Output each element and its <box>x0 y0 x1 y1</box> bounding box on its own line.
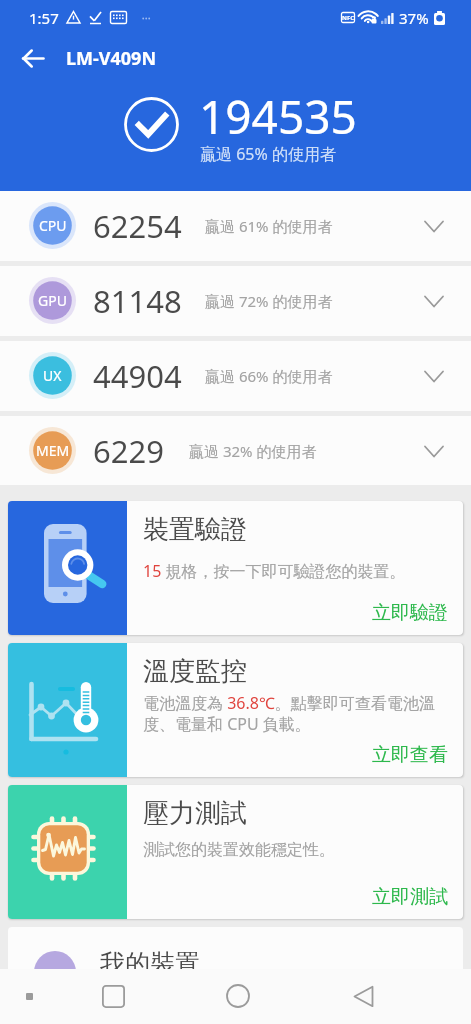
button[interactable]: Home <box>215 974 261 1018</box>
button[interactable]: 立即驗證 <box>372 601 448 625</box>
button[interactable]: MEM <box>0 416 471 485</box>
staticText: UX <box>43 366 62 385</box>
button[interactable]: 我的裝置 <box>8 927 463 1024</box>
staticText: 贏過 32% 的使用者 <box>189 441 317 461</box>
button[interactable]: 壓力測試 <box>8 785 463 919</box>
button[interactable]: Recents <box>90 974 136 1018</box>
staticText: 44904 <box>93 355 182 397</box>
staticText: 81148 <box>93 280 182 322</box>
button[interactable]: CPU <box>0 191 471 261</box>
button[interactable]: 立即查看 <box>372 743 448 767</box>
staticText: 測試您的裝置效能穩定性。 <box>143 840 335 860</box>
button[interactable]: 立即測試 <box>372 885 448 909</box>
staticText: 贏過 65% 的使用者 <box>200 143 336 165</box>
button[interactable]: Back <box>11 36 55 80</box>
staticText: 37% <box>399 8 429 28</box>
staticText: 溫度監控 <box>143 655 247 688</box>
staticText: 194535 <box>199 85 357 148</box>
staticText: 裝置驗證 <box>143 513 247 546</box>
staticText: 電池溫度為 36.8℃。點擊即可查看電池溫度、電量和 CPU 負載。 <box>143 692 448 735</box>
staticText: LM-V409N <box>66 46 157 71</box>
staticText: 贏過 61% 的使用者 <box>205 216 333 236</box>
staticText: CPU <box>39 216 67 235</box>
button[interactable]: Back <box>340 974 386 1018</box>
staticText: MEM <box>36 441 70 460</box>
staticText: 壓力測試 <box>143 797 247 830</box>
staticText: 贏過 66% 的使用者 <box>205 366 333 386</box>
staticText: 15 規格，按一下即可驗證您的裝置。 <box>143 560 406 582</box>
staticText: GPU <box>38 291 67 310</box>
staticText: NFC <box>342 14 355 22</box>
button[interactable]: 溫度監控 <box>8 643 463 777</box>
staticText: 我的裝置 <box>100 948 200 979</box>
button[interactable]: 裝置驗證 <box>8 501 463 635</box>
staticText: 贏過 72% 的使用者 <box>205 291 333 311</box>
staticText: 1:57 <box>29 8 59 28</box>
staticText: 62254 <box>93 205 182 247</box>
button[interactable]: GPU <box>0 266 471 336</box>
button[interactable]: Hide keyboard <box>6 974 52 1018</box>
button[interactable]: UX <box>0 341 471 411</box>
staticText: 6229 <box>93 430 164 472</box>
